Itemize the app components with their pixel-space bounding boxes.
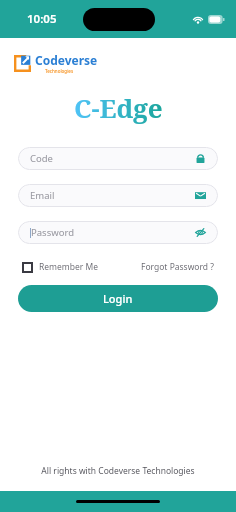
button[interactable]: Forgot Password ? (141, 261, 214, 273)
button[interactable]: Login (18, 285, 218, 312)
staticText: C-Edge (74, 90, 163, 125)
button[interactable]: Password (18, 221, 218, 244)
staticText: 10:05 (27, 11, 57, 27)
staticText: Technologies (45, 68, 74, 74)
staticText: Email (30, 189, 55, 202)
button[interactable]: Remember Me (22, 261, 99, 273)
staticText: Forgot Password ? (141, 261, 214, 273)
button[interactable]: Email (18, 184, 218, 207)
staticText: Codeverse (35, 52, 98, 68)
staticText: Code (30, 152, 53, 165)
staticText: Login (103, 291, 133, 306)
staticText: All rights with Codeverse Technologies (41, 465, 195, 477)
button[interactable]: Code (18, 147, 218, 170)
staticText: Remember Me (39, 261, 99, 273)
staticText: Password (31, 226, 74, 239)
